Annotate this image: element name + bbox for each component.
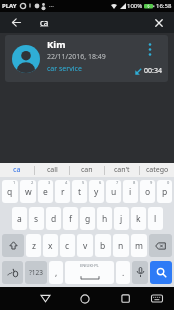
button[interactable]: m bbox=[131, 234, 147, 257]
button[interactable]: j bbox=[114, 207, 129, 230]
staticText: EN(UK)·PL bbox=[80, 263, 99, 268]
button[interactable]: h bbox=[97, 207, 112, 230]
staticText: can't bbox=[114, 165, 130, 175]
button[interactable]: EN(UK)·PL bbox=[65, 261, 114, 284]
button[interactable]: r bbox=[55, 180, 70, 203]
staticText: p bbox=[162, 186, 168, 198]
staticText: x bbox=[48, 240, 53, 252]
button[interactable] bbox=[112, 287, 138, 310]
button[interactable] bbox=[32, 287, 58, 310]
button[interactable]: a bbox=[12, 207, 27, 230]
staticText: m bbox=[135, 240, 143, 252]
staticText: t bbox=[78, 186, 82, 198]
button[interactable]: z bbox=[26, 234, 41, 257]
button[interactable] bbox=[2, 234, 24, 257]
staticText: Kim bbox=[47, 38, 66, 51]
staticText: catego bbox=[146, 165, 169, 175]
button[interactable]: p bbox=[157, 180, 172, 203]
staticText: 9 bbox=[150, 180, 153, 185]
button[interactable]: can bbox=[70, 163, 104, 177]
button[interactable]: c bbox=[60, 234, 75, 257]
button[interactable] bbox=[150, 261, 172, 284]
staticText: y bbox=[94, 186, 99, 198]
button[interactable]: , bbox=[49, 261, 63, 284]
staticText: g bbox=[85, 213, 91, 225]
staticText: w bbox=[25, 186, 32, 198]
button[interactable]: x bbox=[43, 234, 58, 257]
staticText: PLAY bbox=[2, 2, 17, 10]
staticText: , bbox=[55, 267, 58, 279]
staticText: b bbox=[100, 240, 106, 252]
button[interactable] bbox=[144, 12, 174, 33]
staticText: f bbox=[69, 213, 72, 225]
staticText: 16:58 bbox=[156, 2, 172, 10]
staticText: d bbox=[51, 213, 57, 225]
button[interactable]: s bbox=[29, 207, 44, 230]
button[interactable]: w bbox=[20, 180, 36, 203]
staticText: 100% bbox=[127, 2, 143, 10]
staticText: o bbox=[145, 186, 151, 198]
staticText: 7 bbox=[116, 180, 119, 185]
staticText: 0 bbox=[167, 180, 170, 185]
staticText: ca bbox=[13, 165, 21, 175]
button[interactable]: v bbox=[77, 234, 93, 257]
button[interactable]: n bbox=[113, 234, 129, 257]
staticText: ··· bbox=[49, 2, 54, 10]
button[interactable] bbox=[0, 12, 32, 33]
button[interactable]: e bbox=[38, 180, 53, 203]
staticText: s bbox=[34, 213, 39, 225]
button[interactable]: g bbox=[80, 207, 95, 230]
button[interactable]: k bbox=[131, 207, 146, 230]
staticText: car service bbox=[47, 64, 82, 74]
staticText: u bbox=[111, 186, 117, 198]
staticText: c bbox=[65, 240, 70, 252]
button[interactable] bbox=[132, 261, 148, 284]
staticText: 6 bbox=[99, 180, 102, 185]
staticText: 2 bbox=[31, 180, 34, 185]
staticText: q bbox=[7, 186, 13, 198]
button[interactable]: y bbox=[89, 180, 104, 203]
staticText: a bbox=[17, 213, 22, 225]
staticText: 00:34 bbox=[144, 66, 162, 76]
staticText: 5 bbox=[82, 180, 85, 185]
button[interactable]: . bbox=[116, 261, 130, 284]
staticText: n bbox=[118, 240, 124, 252]
staticText: can bbox=[81, 165, 93, 175]
button[interactable] bbox=[144, 287, 170, 310]
button[interactable]: ?123 bbox=[25, 261, 47, 284]
staticText: 1 bbox=[13, 180, 16, 185]
staticText: 8 bbox=[133, 180, 136, 185]
button[interactable]: f bbox=[63, 207, 78, 230]
staticText: ca bbox=[40, 17, 49, 28]
staticText: e bbox=[43, 186, 48, 198]
staticText: 4 bbox=[65, 180, 68, 185]
staticText: l bbox=[154, 213, 157, 225]
staticText: h bbox=[102, 213, 108, 225]
button[interactable]: catego bbox=[140, 163, 174, 177]
button[interactable] bbox=[72, 287, 98, 310]
button[interactable] bbox=[2, 261, 23, 284]
staticText: r bbox=[61, 186, 65, 198]
staticText: z bbox=[32, 240, 36, 252]
staticText: i bbox=[129, 186, 132, 198]
button[interactable]: Kim bbox=[5, 35, 168, 82]
button[interactable]: i bbox=[123, 180, 138, 203]
staticText: . bbox=[122, 267, 125, 279]
button[interactable]: q bbox=[2, 180, 18, 203]
button[interactable]: ca bbox=[0, 163, 34, 177]
staticText: 3 bbox=[48, 180, 51, 185]
button[interactable]: b bbox=[95, 234, 111, 257]
staticText: j bbox=[120, 213, 123, 225]
button[interactable]: u bbox=[106, 180, 121, 203]
staticText: 22/11/2016, 18:49 bbox=[47, 52, 106, 62]
staticText: call bbox=[47, 165, 58, 175]
staticText: k bbox=[136, 213, 141, 225]
button[interactable]: l bbox=[148, 207, 163, 230]
button[interactable]: d bbox=[46, 207, 61, 230]
staticText: v bbox=[83, 240, 88, 252]
button[interactable]: can't bbox=[105, 163, 139, 177]
button[interactable]: t bbox=[72, 180, 87, 203]
button[interactable]: call bbox=[35, 163, 69, 177]
button[interactable] bbox=[149, 234, 172, 257]
button[interactable]: o bbox=[140, 180, 155, 203]
